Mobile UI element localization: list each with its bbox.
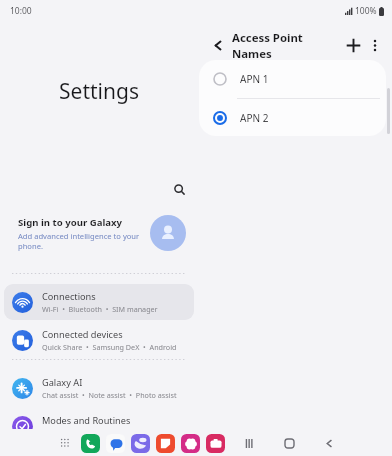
button[interactable]: Notes <box>156 434 175 453</box>
staticText: 100% <box>355 5 377 17</box>
button[interactable]: Back <box>319 433 339 453</box>
button[interactable]: APN 1 <box>199 60 386 98</box>
button[interactable]: Apps <box>55 433 75 453</box>
staticText: Access Point Names <box>232 30 342 60</box>
button[interactable]: Phone <box>81 434 100 453</box>
staticText: Settings <box>0 77 198 106</box>
button[interactable]: Connections <box>4 284 194 320</box>
button[interactable]: Search settings <box>168 178 190 200</box>
staticText: Galaxy AI <box>42 376 83 389</box>
staticText: 10:00 <box>10 5 32 17</box>
staticText: Chat assist • Note assist • Photo assist <box>42 390 177 400</box>
staticText: Connections <box>42 290 96 303</box>
button[interactable]: Internet <box>131 434 150 453</box>
button[interactable]: Connected devices <box>4 322 194 358</box>
staticText: Connected devices <box>42 328 123 341</box>
button[interactable]: Recent apps <box>239 433 259 453</box>
button[interactable]: Navigate up <box>208 35 228 55</box>
staticText: APN 1 <box>240 72 269 86</box>
button[interactable]: Add APN <box>342 34 364 56</box>
button[interactable]: Gallery <box>181 434 200 453</box>
button[interactable]: Messages <box>106 434 125 453</box>
staticText: Wi-Fi • Bluetooth • SIM manager <box>42 304 158 314</box>
button[interactable]: Camera <box>206 434 225 453</box>
staticText: APN 2 <box>240 111 269 125</box>
staticText: Quick Share • Samsung DeX • Android Auto <box>42 342 188 352</box>
button[interactable]: Modes and Routines <box>4 408 194 444</box>
staticText: Modes and Routines <box>42 414 131 427</box>
staticText: Add advanced intelligence to your phone. <box>18 231 140 251</box>
staticText: Modes • Routines <box>42 428 105 438</box>
button[interactable]: More options <box>366 36 384 54</box>
button[interactable]: Home <box>279 433 299 453</box>
button[interactable]: Galaxy AI <box>4 370 194 406</box>
button[interactable]: Sign in to your Galaxy <box>0 204 198 262</box>
staticText: Sign in to your Galaxy <box>18 216 123 229</box>
button[interactable]: APN 2 <box>199 99 386 136</box>
